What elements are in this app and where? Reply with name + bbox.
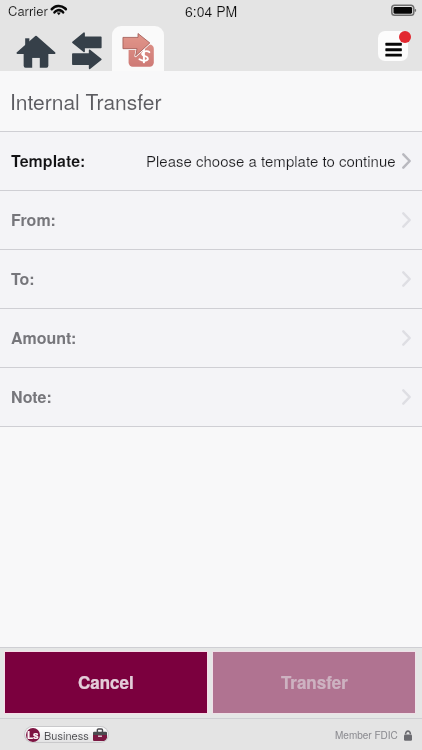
staticText: Business [44, 727, 89, 742]
staticText: Amount: [11, 326, 77, 349]
button[interactable]: Cancel [4, 651, 208, 714]
staticText: Carrier [8, 1, 48, 20]
staticText: Ls [27, 728, 39, 742]
button[interactable]: Home [16, 34, 55, 68]
staticText: Template: [11, 149, 86, 172]
button[interactable]: Transfer [212, 651, 416, 714]
button[interactable]: Note: [0, 368, 422, 426]
staticText: Internal Transfer [10, 86, 162, 116]
staticText: 6:04 PM [185, 1, 238, 21]
staticText: From: [11, 208, 56, 231]
staticText: Transfer [281, 670, 348, 694]
button[interactable]: Ls [25, 727, 108, 742]
button[interactable]: Internal Transfer [112, 26, 164, 71]
button[interactable]: Menu [375, 28, 411, 64]
button[interactable]: Amount: [0, 309, 422, 367]
staticText: Cancel [78, 670, 134, 694]
button[interactable]: Template: [0, 132, 422, 190]
button[interactable]: From: [0, 191, 422, 249]
button[interactable]: Transfers [69, 32, 103, 70]
staticText: Please choose a template to continue [146, 150, 396, 171]
staticText: Note: [11, 385, 52, 408]
button[interactable]: To: [0, 250, 422, 308]
staticText: To: [11, 267, 35, 290]
staticText: Member FDIC [335, 728, 398, 742]
